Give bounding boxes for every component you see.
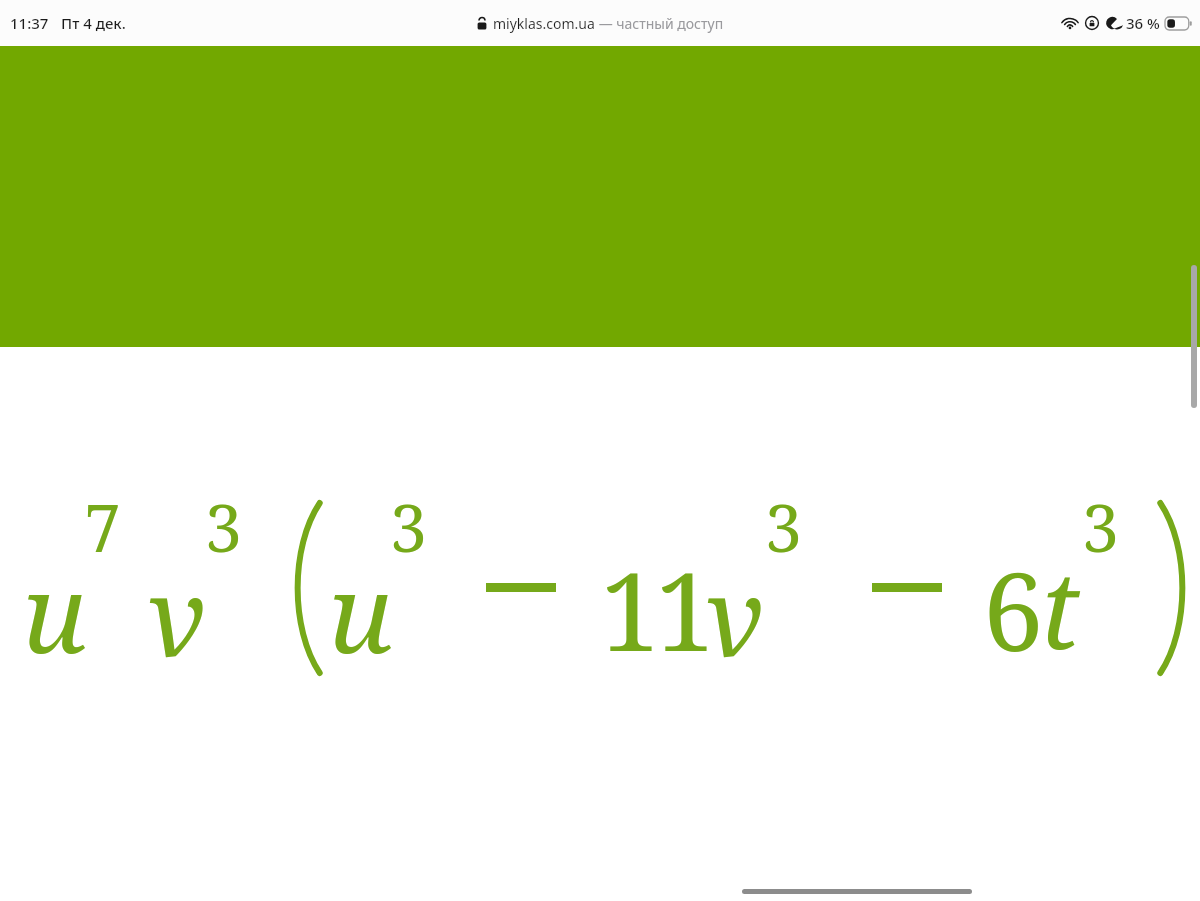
staticText: v [706, 541, 765, 688]
other: Wi-Fi [1061, 16, 1079, 30]
staticText: 3 [1082, 481, 1119, 571]
staticText: 11:37 [10, 13, 49, 33]
staticText: 3 [205, 481, 242, 571]
staticText: 7 [84, 481, 121, 571]
staticText: u [328, 538, 393, 685]
staticText: — частный доступ [595, 14, 724, 33]
staticText: v [148, 541, 207, 688]
staticText: u [22, 538, 87, 685]
staticText: 3 [390, 481, 427, 571]
button[interactable]: Secure connection [477, 14, 724, 33]
staticText: 6 [983, 536, 1044, 683]
staticText: 36 % [1126, 13, 1160, 33]
button[interactable] [0, 46, 1200, 347]
other: Battery 36 percent [1165, 17, 1192, 30]
staticText: 3 [765, 481, 802, 571]
staticText: t [1040, 534, 1080, 681]
staticText: Пт 4 дек. [61, 13, 126, 33]
staticText: 1 [655, 536, 716, 683]
staticText: 1 [600, 536, 661, 683]
other: Rotation lock [1085, 16, 1099, 30]
other: Secure connection [477, 17, 487, 30]
staticText: miyklas.com.ua [493, 14, 595, 33]
other: Do not disturb [1105, 16, 1119, 30]
